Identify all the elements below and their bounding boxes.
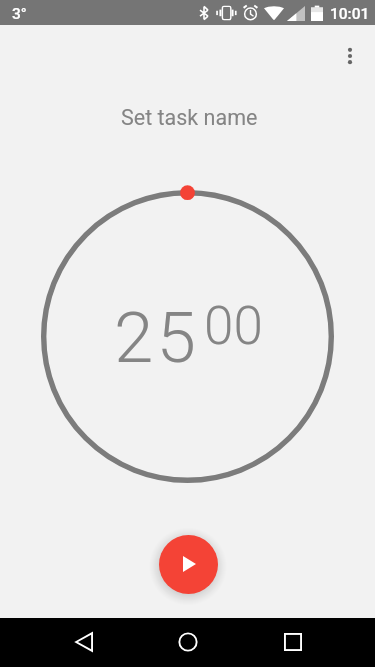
staticText: 25: [114, 296, 199, 379]
staticText: 10:01: [330, 5, 370, 23]
staticText: 3°: [12, 5, 27, 23]
staticText: Set task name: [121, 105, 258, 130]
staticText: 00: [204, 295, 263, 357]
button[interactable]: More options: [326, 32, 374, 80]
button[interactable]: Set task name: [119, 97, 259, 137]
button[interactable]: Start timer: [159, 535, 218, 594]
button[interactable]: Recent apps: [268, 617, 318, 666]
button[interactable]: Timer: [33, 182, 343, 492]
button[interactable]: Back: [59, 617, 109, 666]
button[interactable]: Home: [163, 617, 213, 666]
